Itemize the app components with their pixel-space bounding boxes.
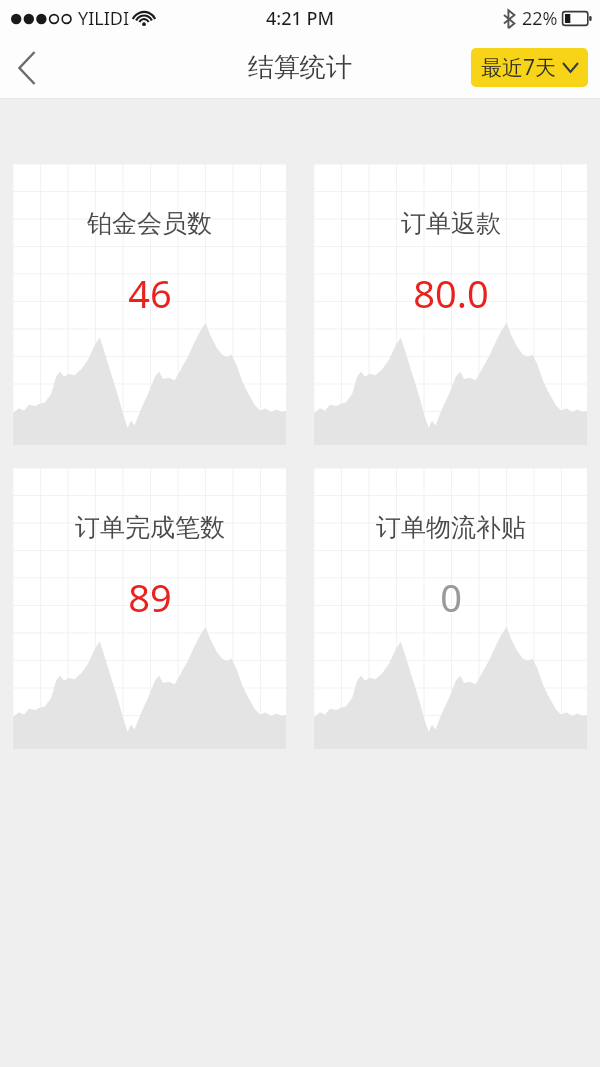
staticText: 80.0 — [413, 267, 489, 319]
staticText: 最近7天 — [481, 53, 557, 82]
staticText: 22% — [522, 6, 558, 31]
staticText: 结算统计 — [248, 51, 352, 84]
staticText: 46 — [128, 267, 172, 319]
button[interactable]: Back — [0, 41, 54, 95]
button[interactable]: 铂金会员数 — [13, 164, 286, 445]
staticText: 0 — [440, 571, 462, 623]
button[interactable]: 订单物流补贴 — [314, 468, 587, 749]
staticText: 订单完成笔数 — [75, 512, 225, 543]
staticText: 4:21 PM — [266, 6, 334, 31]
staticText: 89 — [128, 571, 172, 623]
staticText: YILIDI — [78, 6, 130, 31]
staticText: 订单返款 — [401, 208, 501, 239]
button[interactable]: 订单返款 — [314, 164, 587, 445]
staticText: 订单物流补贴 — [376, 512, 526, 543]
button[interactable]: 最近7天 — [471, 48, 588, 87]
staticText: 铂金会员数 — [87, 208, 212, 239]
button[interactable]: 订单完成笔数 — [13, 468, 286, 749]
